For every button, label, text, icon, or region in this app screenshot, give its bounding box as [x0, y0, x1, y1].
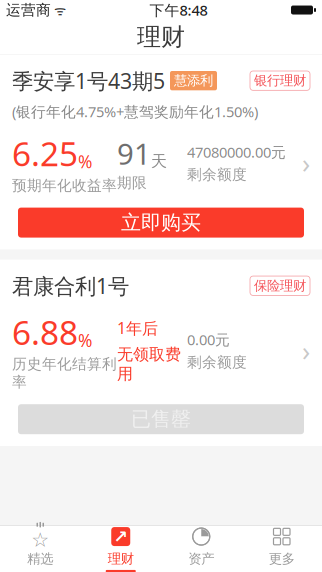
staticText: 下午8:48 [149, 0, 207, 20]
staticText: 历史年化结算利率 [12, 355, 117, 391]
staticText: 运营商 [6, 1, 51, 19]
staticText: 更多 [269, 551, 295, 567]
staticText: 资产 [188, 551, 214, 567]
button[interactable]: 资产 [161, 526, 241, 572]
button[interactable]: 更多 [241, 526, 322, 572]
staticText: › [302, 145, 310, 181]
staticText: % [78, 329, 92, 352]
staticText: 6.88 [12, 310, 78, 354]
staticText: 预期年化收益率 [12, 177, 117, 195]
staticText: 立即购买 [121, 210, 201, 235]
button[interactable]: 君康合利1号 [0, 260, 322, 446]
staticText: ↗ [113, 527, 128, 546]
staticText: 6.25 [12, 131, 78, 176]
staticText: › [302, 333, 310, 368]
staticText: ☆ [31, 528, 49, 551]
staticText: 慧添利 [174, 72, 213, 89]
button[interactable]: ☆ [0, 526, 80, 572]
staticText: 理财 [108, 551, 134, 567]
staticText: 理财 [137, 22, 185, 52]
staticText: 天 [151, 151, 167, 171]
button[interactable]: 立即购买 [18, 208, 304, 238]
staticText: 91 [117, 134, 151, 173]
staticText: 0.00元 [187, 330, 230, 349]
staticText: 期限 [117, 174, 147, 192]
staticText: 剩余额度 [187, 166, 247, 184]
staticText: 银行理财 [254, 72, 306, 89]
button[interactable]: 季安享1号43期5 [0, 54, 322, 250]
staticText: 保险理财 [254, 278, 306, 294]
staticText: % [78, 150, 92, 173]
staticText: 47080000.00元 [187, 142, 286, 162]
staticText: 无领取费用 [117, 344, 181, 384]
staticText: (银行年化4.75%+慧驾奖励年化1.50%) [12, 102, 258, 121]
staticText: 已售罄 [131, 407, 191, 431]
button[interactable]: ↗ [80, 526, 161, 572]
staticText: 精选 [27, 551, 53, 567]
staticText: 剩余额度 [187, 353, 247, 371]
staticText: 1年后 [117, 317, 158, 338]
staticText: 季安享1号43期5 [12, 66, 165, 95]
staticText: 君康合利1号 [12, 272, 129, 300]
button[interactable]: 已售罄 [18, 404, 304, 434]
staticText: ᯤ [51, 1, 66, 19]
